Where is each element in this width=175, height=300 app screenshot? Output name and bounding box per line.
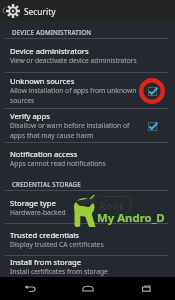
staticText: DEVICE ADMINISTRATION — [12, 28, 92, 36]
staticText: Install from storage — [10, 257, 82, 267]
button[interactable]: Back — [0, 277, 59, 300]
staticText: Allow installation of apps from unknown … — [10, 86, 141, 105]
staticText: Trusted credentials — [10, 230, 79, 240]
button[interactable]: Device administrators — [0, 39, 175, 72]
staticText: Root — [99, 199, 124, 213]
button[interactable]: Home — [59, 277, 117, 300]
staticText: Install certificates from storage — [10, 267, 108, 276]
button[interactable]: Unknown sources — [0, 73, 175, 108]
button[interactable]: Storage type — [0, 191, 175, 223]
staticText: Display trusted CA certificates — [10, 240, 104, 249]
button[interactable]: Recent apps — [117, 277, 175, 300]
button[interactable]: Trusted credentials — [0, 224, 175, 255]
button[interactable]: Navigate up — [0, 0, 21, 21]
staticText: Storage type — [10, 198, 56, 208]
staticText: Notification access — [10, 149, 78, 159]
button[interactable]: Notification access — [0, 143, 175, 174]
staticText: My Andro_D — [97, 210, 165, 226]
staticText: Apps cannot read notifications — [10, 159, 106, 168]
staticText: Hardware-backed — [10, 208, 66, 217]
staticText: Verify apps — [10, 111, 50, 121]
staticText: Unknown sources — [10, 76, 75, 86]
button[interactable]: Verify apps — [0, 109, 175, 142]
button[interactable]: Install from storage — [0, 256, 175, 277]
staticText: Disallow or warn before installation of … — [10, 121, 141, 140]
staticText: CREDENTIAL STORAGE — [12, 180, 81, 188]
staticText: Security — [24, 6, 56, 17]
staticText: View or deactivate device administrators — [10, 56, 137, 65]
staticText: Device administrators — [10, 46, 89, 56]
